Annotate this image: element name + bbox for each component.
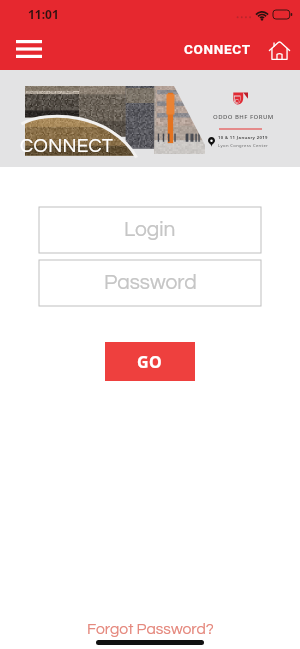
button[interactable]: Login <box>39 207 261 253</box>
staticText: Password <box>104 272 197 294</box>
button[interactable]: Home <box>264 34 294 64</box>
button[interactable]: Forgot Password? <box>87 621 214 637</box>
staticText: ODDO BHF FORUM <box>213 113 274 121</box>
staticText: Login <box>124 219 176 241</box>
staticText: GO <box>137 351 163 373</box>
staticText: CONNECT <box>20 136 114 156</box>
button[interactable]: GO <box>105 342 195 381</box>
button[interactable]: Menu <box>10 34 48 64</box>
button[interactable]: CONNECT <box>184 41 251 57</box>
staticText: Lyon Congress Center <box>218 143 269 149</box>
staticText: 11:01 <box>28 6 59 22</box>
staticText: 10 & 11 January 2019 <box>218 135 268 141</box>
button[interactable]: Password <box>39 260 261 306</box>
